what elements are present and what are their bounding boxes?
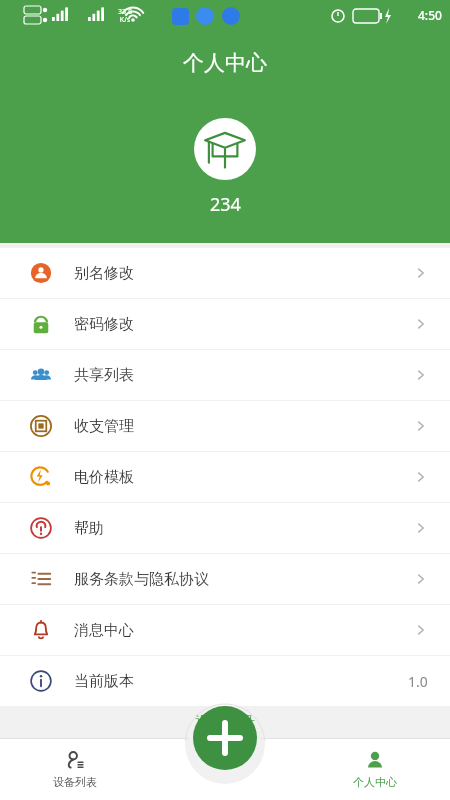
staticText: 当前版本 — [74, 672, 134, 691]
button[interactable]: 别名修改 — [0, 248, 450, 298]
staticText: 电价模板 — [74, 468, 134, 487]
button[interactable]: 电价模板 — [0, 452, 450, 502]
staticText: 1.0 — [408, 672, 428, 691]
staticText: 收支管理 — [74, 417, 134, 436]
staticText: 个人中心 — [353, 775, 397, 789]
staticText: 设备列表 — [53, 775, 97, 789]
button[interactable]: 当前版本 — [0, 656, 450, 706]
button[interactable]: 收支管理 — [0, 401, 450, 451]
button[interactable]: 共享列表 — [0, 350, 450, 400]
button[interactable]: 服务条款与隐私协议 — [0, 554, 450, 604]
button[interactable]: 个人中心 — [300, 738, 450, 800]
staticText: 共享列表 — [74, 366, 134, 385]
staticText: 服务条款与隐私协议 — [74, 570, 209, 589]
button[interactable]: 密码修改 — [0, 299, 450, 349]
staticText: 33.8 K/s — [118, 7, 132, 24]
button[interactable]: Add — [193, 706, 257, 770]
staticText: 帮助 — [74, 519, 104, 538]
button[interactable]: 消息中心 — [0, 605, 450, 655]
staticText: 4:50 — [418, 7, 442, 23]
staticText: 234 — [210, 192, 241, 217]
staticText: 退出登录 — [195, 713, 255, 732]
staticText: 个人中心 — [183, 50, 267, 76]
button[interactable]: 设备列表 — [0, 738, 150, 800]
staticText: 密码修改 — [74, 315, 134, 334]
staticText: 消息中心 — [74, 621, 134, 640]
button[interactable]: 帮助 — [0, 503, 450, 553]
button[interactable]: 退出登录 — [0, 706, 450, 738]
staticText: 别名修改 — [74, 264, 134, 283]
button[interactable]: Avatar — [194, 118, 256, 180]
